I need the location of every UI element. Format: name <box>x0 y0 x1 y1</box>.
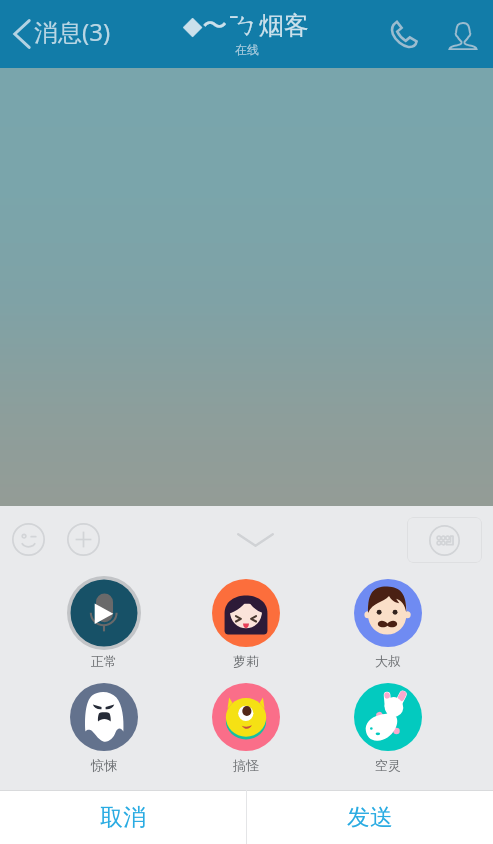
staticText: 大叔 <box>333 653 443 669</box>
button[interactable]: Emoji <box>12 523 45 556</box>
staticText: 惊悚 <box>49 757 159 773</box>
button[interactable]: 发送 <box>247 790 493 844</box>
button[interactable]: 正常 <box>49 576 159 669</box>
staticText: ◆〜 ̄ㄅ烟客 <box>183 7 310 41</box>
staticText: 空灵 <box>333 757 443 773</box>
button[interactable]: 空灵 <box>333 680 443 773</box>
button[interactable]: Profile <box>433 0 493 68</box>
staticText: 搞怪 <box>191 757 301 773</box>
button[interactable]: 萝莉 <box>191 576 301 669</box>
button[interactable]: Keyboard <box>407 517 482 563</box>
button[interactable]: 惊悚 <box>49 680 159 773</box>
button[interactable]: Collapse <box>226 525 285 555</box>
staticText: 消息(3) <box>34 15 111 48</box>
staticText: 正常 <box>49 653 159 669</box>
button[interactable]: 大叔 <box>333 576 443 669</box>
staticText: 萝莉 <box>191 653 301 669</box>
staticText: 取消 <box>100 803 146 832</box>
staticText: 发送 <box>347 803 393 832</box>
button[interactable]: 取消 <box>0 790 246 844</box>
staticText: 在线 <box>235 42 259 57</box>
button[interactable]: 消息(3) <box>0 0 121 68</box>
button[interactable]: More <box>67 523 100 556</box>
button[interactable]: 搞怪 <box>191 680 301 773</box>
button[interactable]: Call <box>373 0 433 68</box>
